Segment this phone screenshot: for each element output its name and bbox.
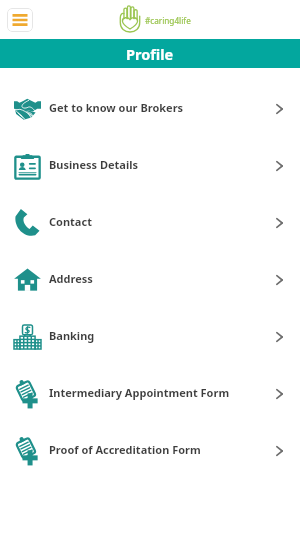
staticText: Intermediary Appointment Form [49, 385, 230, 400]
staticText: Profile [126, 44, 174, 64]
button[interactable]: Menu [7, 8, 33, 32]
staticText: Get to know our Brokers [49, 100, 184, 115]
button[interactable]: Proof of Accreditation Form [0, 422, 300, 479]
button[interactable]: Intermediary Appointment Form [0, 365, 300, 422]
staticText: #caring4life [145, 15, 191, 26]
staticText: Address [49, 271, 93, 286]
button[interactable]: Contact [0, 194, 300, 251]
button[interactable]: Get to know our Brokers [0, 80, 300, 137]
button[interactable]: Business Details [0, 137, 300, 194]
staticText: Business Details [49, 157, 138, 172]
button[interactable]: Address [0, 251, 300, 308]
staticText: Proof of Accreditation Form [49, 442, 201, 457]
staticText: Contact [49, 214, 92, 229]
staticText: Banking [49, 328, 95, 343]
button[interactable]: Banking [0, 308, 300, 365]
